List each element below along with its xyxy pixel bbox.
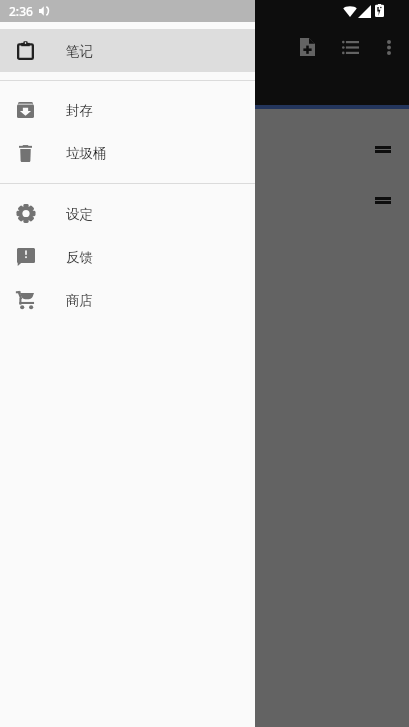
staticText: 商店 — [66, 292, 93, 309]
staticText: 2:36 — [9, 3, 33, 19]
button[interactable]: 设定 — [0, 192, 255, 235]
staticText: 垃圾桶 — [66, 145, 107, 162]
button[interactable]: Toggle list view — [334, 31, 366, 63]
button[interactable]: 笔记 — [0, 29, 255, 72]
button[interactable]: More options — [373, 31, 405, 63]
staticText: 反馈 — [66, 249, 93, 266]
staticText: 设定 — [66, 206, 93, 223]
button[interactable]: 商店 — [0, 278, 255, 321]
button[interactable]: 垃圾桶 — [0, 131, 255, 174]
staticText: 笔记 — [66, 43, 93, 60]
button[interactable]: New note — [291, 31, 323, 63]
button[interactable]: 反馈 — [0, 235, 255, 278]
button[interactable]: 封存 — [0, 88, 255, 131]
staticText: 封存 — [66, 102, 93, 119]
